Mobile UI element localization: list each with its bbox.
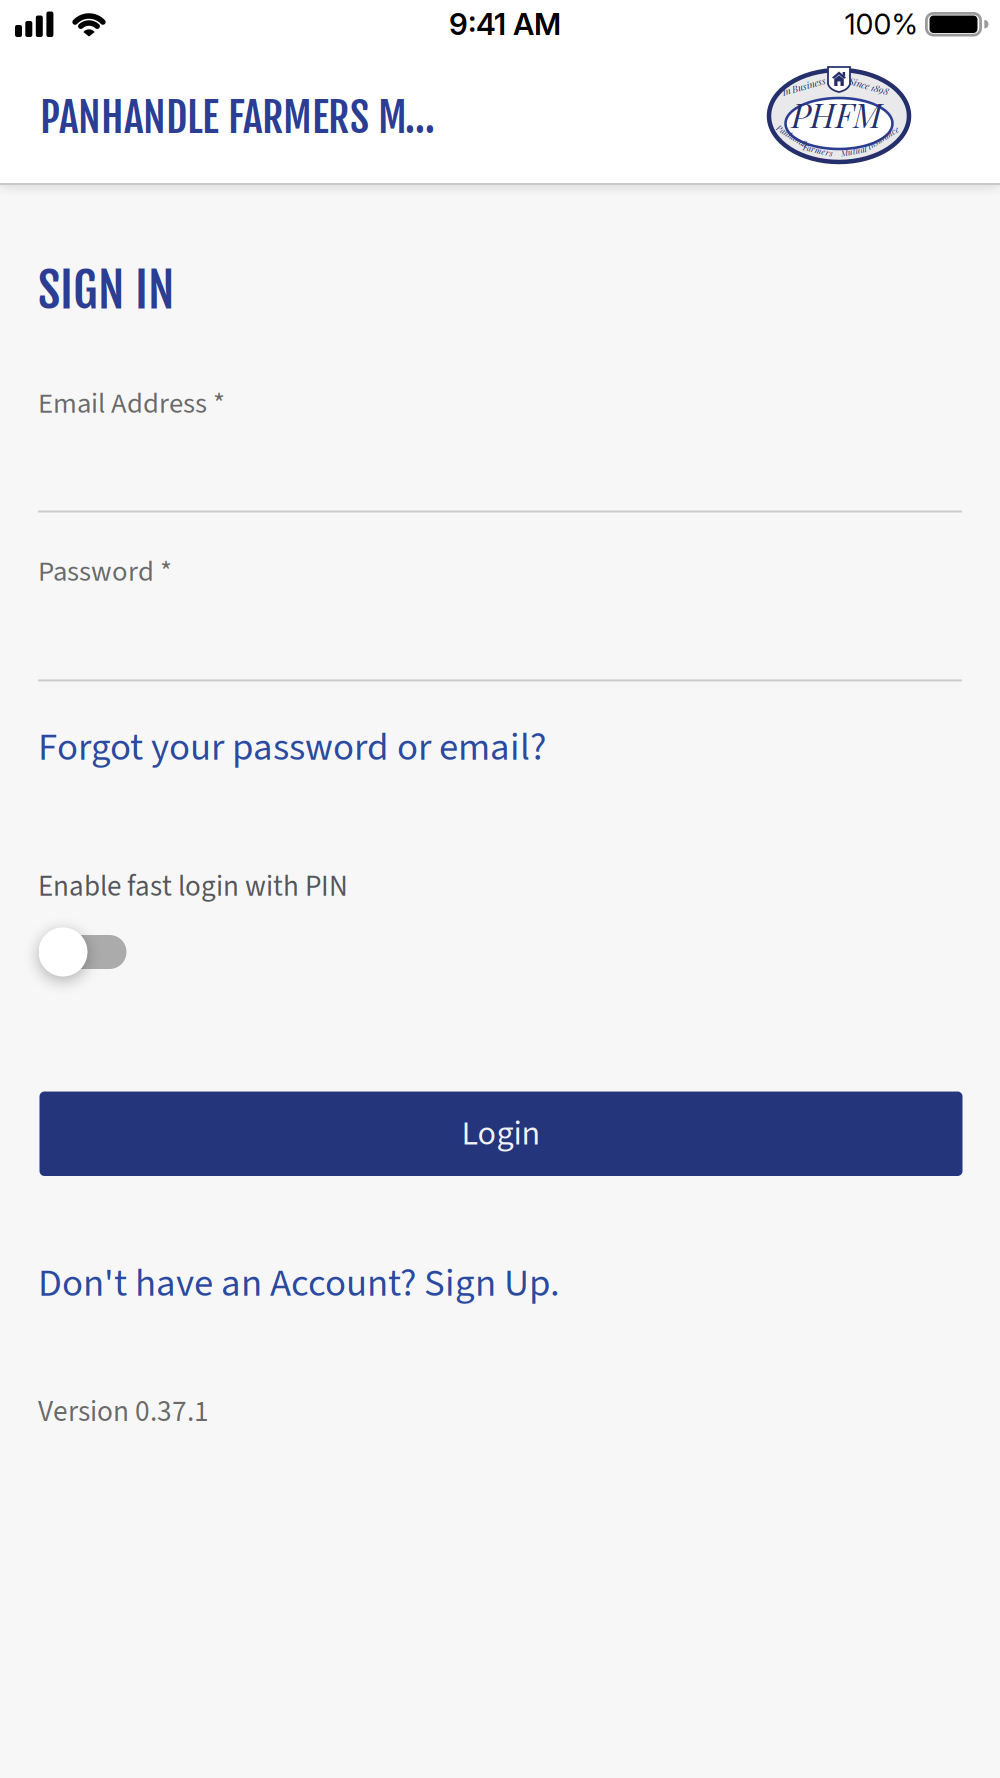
staticText: Version 0.37.1 xyxy=(38,1391,209,1433)
staticText: Forgot your password or email? xyxy=(38,720,546,775)
staticText: 100% xyxy=(844,7,917,41)
staticText: Password * xyxy=(38,551,172,592)
button[interactable]: Email Address xyxy=(38,383,962,512)
staticText: Enable fast login with PIN xyxy=(38,866,348,907)
staticText: Insurance xyxy=(865,132,901,143)
staticText: In Business xyxy=(781,80,826,92)
staticText: PHFM xyxy=(791,93,881,136)
staticText: Mutual xyxy=(840,145,866,156)
staticText: Panhandle xyxy=(774,131,811,142)
button[interactable]: Enable fast login with PIN xyxy=(38,927,126,976)
button[interactable]: Login xyxy=(39,1091,962,1176)
button[interactable]: Forgot your password or email? xyxy=(38,720,546,775)
button[interactable]: Password xyxy=(38,551,962,681)
staticText: Email Address * xyxy=(38,383,225,424)
staticText: PANHANDLE FARMERS M… xyxy=(40,91,435,143)
button[interactable]: Don't have an Account? Sign Up. xyxy=(38,1256,560,1311)
staticText: 9:41 AM xyxy=(449,6,561,42)
staticText: Since 1898 xyxy=(848,80,889,92)
staticText: Login xyxy=(461,1109,540,1158)
staticText: Don't have an Account? Sign Up. xyxy=(38,1256,560,1311)
staticText: SIGN IN xyxy=(38,259,174,321)
staticText: Farmers xyxy=(803,144,833,155)
